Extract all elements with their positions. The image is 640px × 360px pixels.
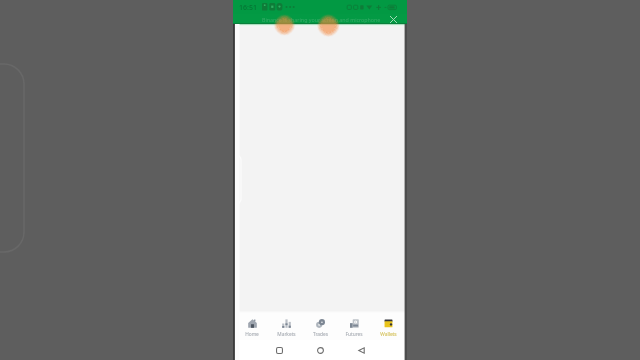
button[interactable]: Recents [269,340,289,360]
button[interactable]: Wallets [373,313,403,340]
staticText: Trades [313,331,328,338]
button[interactable]: Binance is sharing your screen and micro… [233,14,407,24]
staticText: 16:51 [239,3,257,13]
button[interactable]: Markets [271,313,301,340]
button[interactable]: Home [237,313,267,340]
staticText: Home [245,331,259,338]
button[interactable]: Trades [305,313,335,340]
staticText: Wallets [380,331,397,338]
button[interactable]: Home [310,340,330,360]
button[interactable]: Futures [339,313,369,340]
button[interactable]: Back [351,340,371,360]
staticText: Markets [277,331,296,338]
staticText: Futures [345,331,363,338]
staticText: Binance is sharing your screen and micro… [262,16,381,23]
button[interactable]: Close [387,14,400,24]
